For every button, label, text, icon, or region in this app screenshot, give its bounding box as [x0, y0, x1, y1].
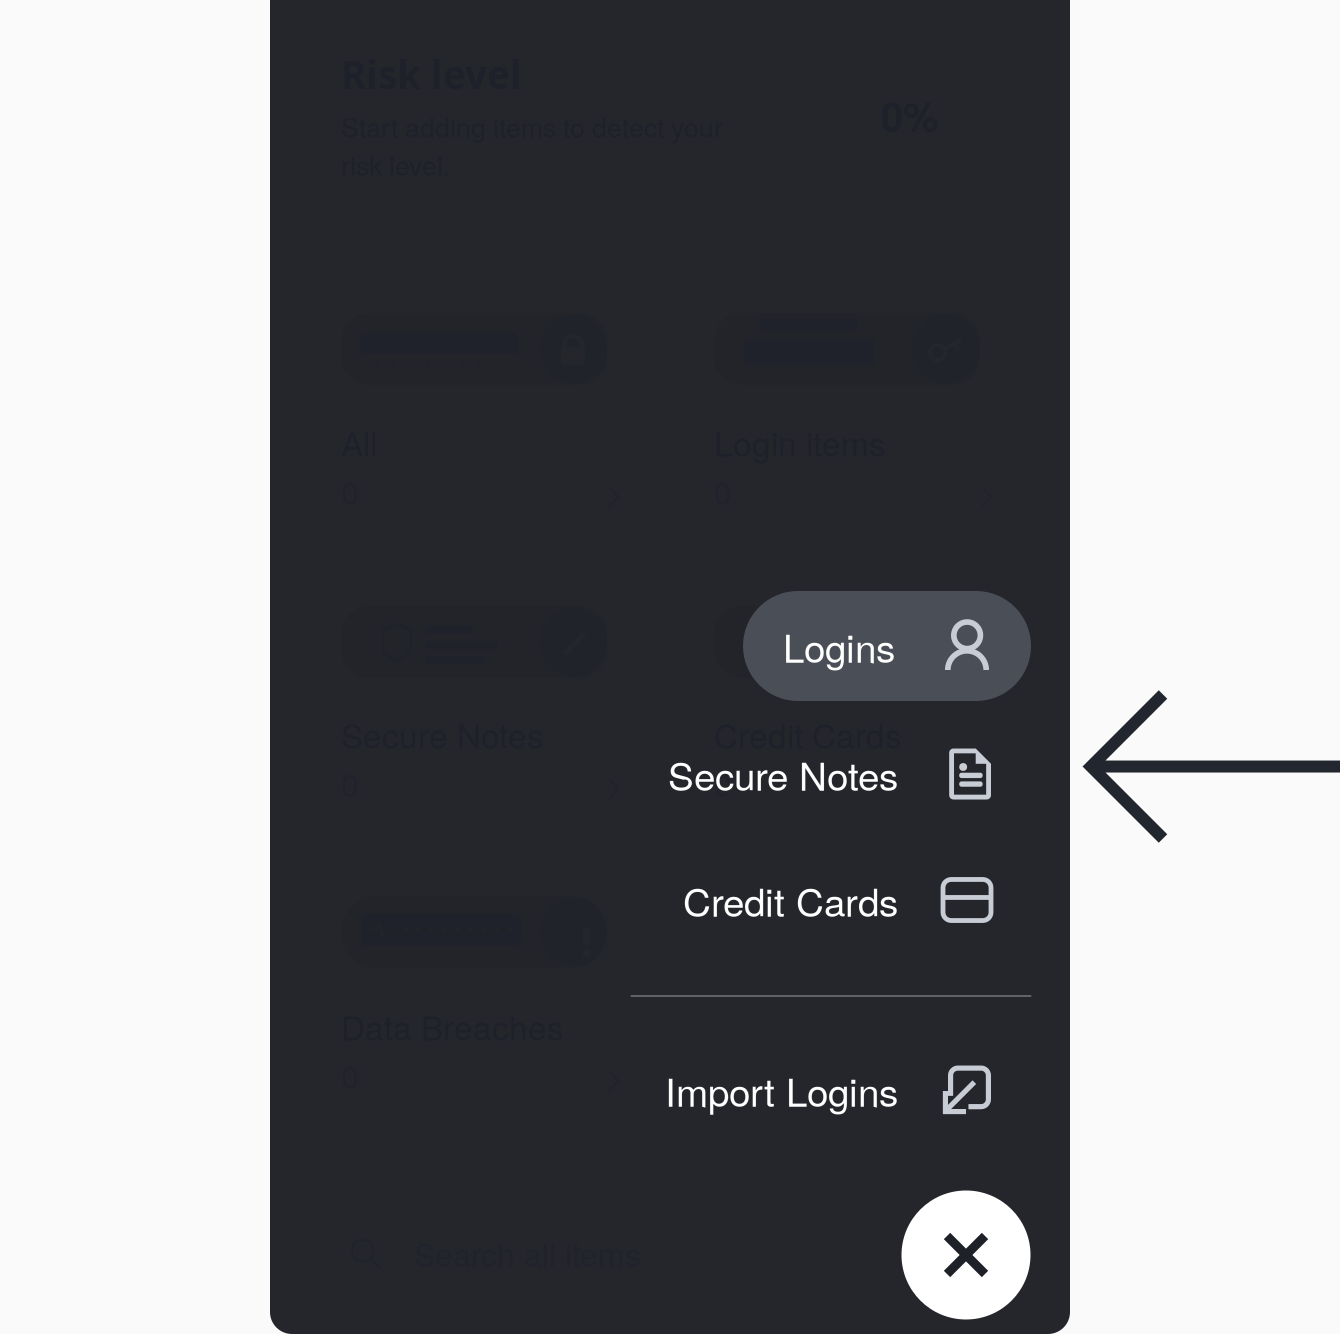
button[interactable]: Import Logins [631, 1034, 991, 1146]
button[interactable]: Close menu [901, 1190, 1030, 1319]
staticText: Import Logins [665, 1062, 898, 1118]
button[interactable]: Credit Cards [631, 844, 991, 956]
staticText: Logins [783, 618, 895, 674]
button[interactable]: Secure Notes [631, 718, 991, 830]
button[interactable]: Logins [743, 591, 1031, 701]
staticText: Secure Notes [668, 746, 898, 802]
staticText: Credit Cards [683, 872, 898, 928]
staticText: 0 [714, 760, 732, 806]
